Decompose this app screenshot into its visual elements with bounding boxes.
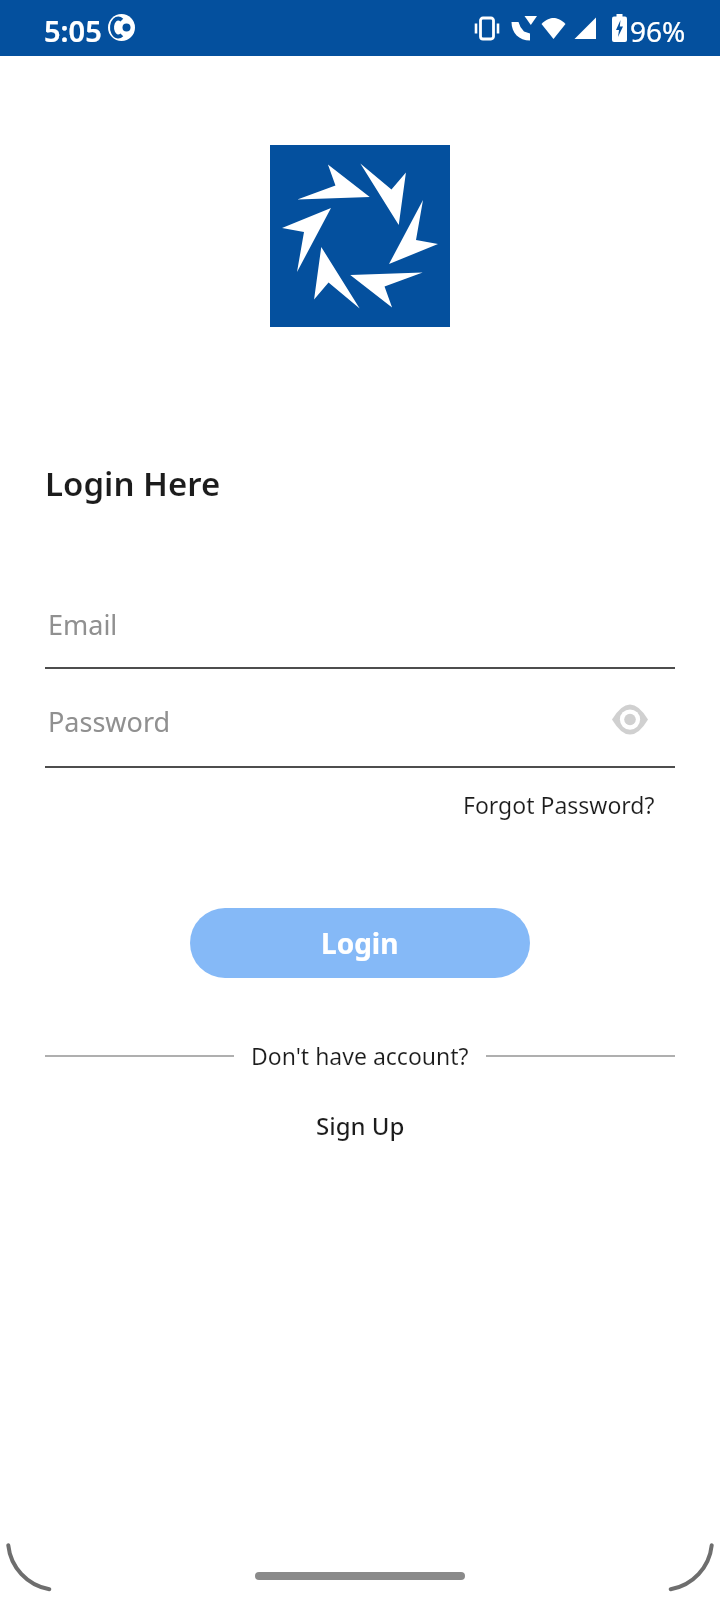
staticText: Login Here	[45, 461, 221, 506]
staticText: Don't have account?	[251, 1040, 469, 1071]
staticText: Login	[321, 924, 399, 962]
staticText: Email	[48, 606, 118, 643]
button[interactable]: Email	[45, 590, 675, 669]
staticText: 5:05	[44, 11, 102, 50]
button[interactable]	[612, 706, 648, 733]
button[interactable]: Sign Up	[316, 1109, 405, 1142]
staticText: 96%	[630, 12, 686, 50]
button[interactable]: Password	[45, 690, 675, 768]
button[interactable]: Login	[190, 908, 530, 978]
button[interactable]: Forgot Password?	[463, 789, 655, 820]
staticText: Password	[48, 703, 171, 740]
